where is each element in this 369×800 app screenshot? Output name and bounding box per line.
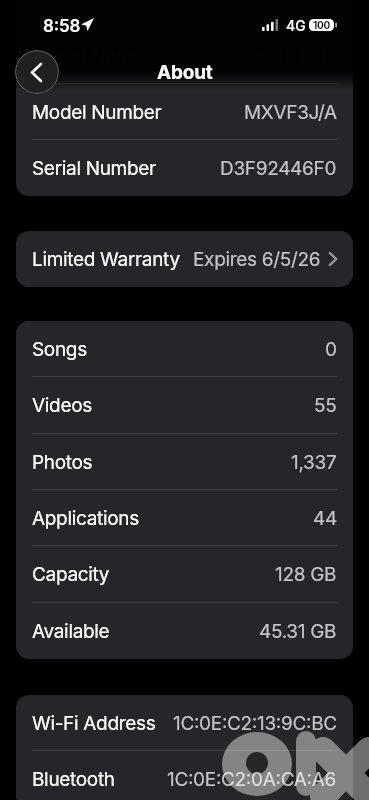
staticText: 4G — [286, 17, 306, 34]
staticText: 128 GB — [275, 563, 337, 586]
button[interactable]: Serial Number — [16, 140, 353, 196]
button[interactable]: Limited Warranty — [16, 231, 353, 287]
staticText: 1C:0E:C2:0A:CA:A6 — [167, 768, 337, 791]
button[interactable]: Songs — [16, 321, 353, 377]
staticText: Expires 6/5/26 — [193, 248, 321, 271]
staticText: Videos — [32, 394, 92, 417]
staticText: Songs — [32, 338, 87, 361]
staticText: 45.31 GB — [259, 620, 337, 643]
staticText: About — [157, 61, 213, 84]
staticText: Available — [32, 620, 110, 643]
staticText: Capacity — [32, 563, 110, 586]
button[interactable]: Capacity — [16, 546, 353, 603]
staticText: Model Number — [32, 101, 162, 124]
button[interactable]: Wi-Fi Address — [16, 695, 353, 751]
staticText: 1,337 — [291, 451, 337, 474]
staticText: Limited Warranty — [32, 248, 180, 271]
button[interactable]: Videos — [16, 377, 353, 434]
button[interactable]: iOS Version — [16, 0, 353, 27]
button[interactable]: Back — [15, 50, 59, 94]
button[interactable]: Applications — [16, 490, 353, 546]
staticText: Model Name — [32, 44, 143, 67]
staticText: 44 — [313, 507, 337, 530]
staticText: 0 — [325, 338, 337, 361]
staticText: D3F92446F0 — [220, 157, 337, 180]
staticText: Bluetooth — [32, 768, 115, 791]
staticText: Applications — [32, 507, 139, 530]
staticText: 8:58 — [43, 16, 81, 37]
button[interactable]: Available — [16, 603, 353, 659]
staticText: Wi-Fi Address — [32, 712, 156, 735]
staticText: 100 — [313, 19, 330, 31]
button[interactable]: Model Number — [16, 84, 353, 140]
staticText: 1C:0E:C2:13:9C:BC — [173, 712, 337, 735]
staticText: Photos — [32, 451, 93, 474]
staticText: Serial Number — [32, 157, 156, 180]
button[interactable]: Model Name — [16, 27, 353, 84]
button[interactable]: Bluetooth — [16, 751, 353, 800]
staticText: 55 — [314, 394, 337, 417]
staticText: MXVF3J/A — [244, 101, 337, 124]
button[interactable]: Photos — [16, 434, 353, 490]
